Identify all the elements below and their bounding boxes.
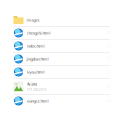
button[interactable]: lvyou.html bbox=[0, 66, 128, 78]
button[interactable]: xiangce.html bbox=[0, 95, 128, 107]
staticText: jingdian.html bbox=[26, 56, 48, 62]
button[interactable]: dy.jpg bbox=[0, 79, 128, 94]
button[interactable]: jingdian.html bbox=[0, 53, 128, 65]
button[interactable]: index.html bbox=[0, 40, 128, 52]
staticText: dy.jpg bbox=[26, 81, 36, 86]
staticText: chengshi.html bbox=[26, 30, 50, 36]
staticText: index.html bbox=[26, 43, 44, 49]
button[interactable]: chengshi.html bbox=[0, 27, 128, 39]
staticText: images bbox=[26, 17, 39, 23]
staticText: xiangce.html bbox=[26, 98, 48, 104]
button[interactable]: images bbox=[0, 14, 128, 26]
staticText: 101 KB 2016 bbox=[26, 87, 46, 92]
staticText: lvyou.html bbox=[26, 69, 44, 75]
